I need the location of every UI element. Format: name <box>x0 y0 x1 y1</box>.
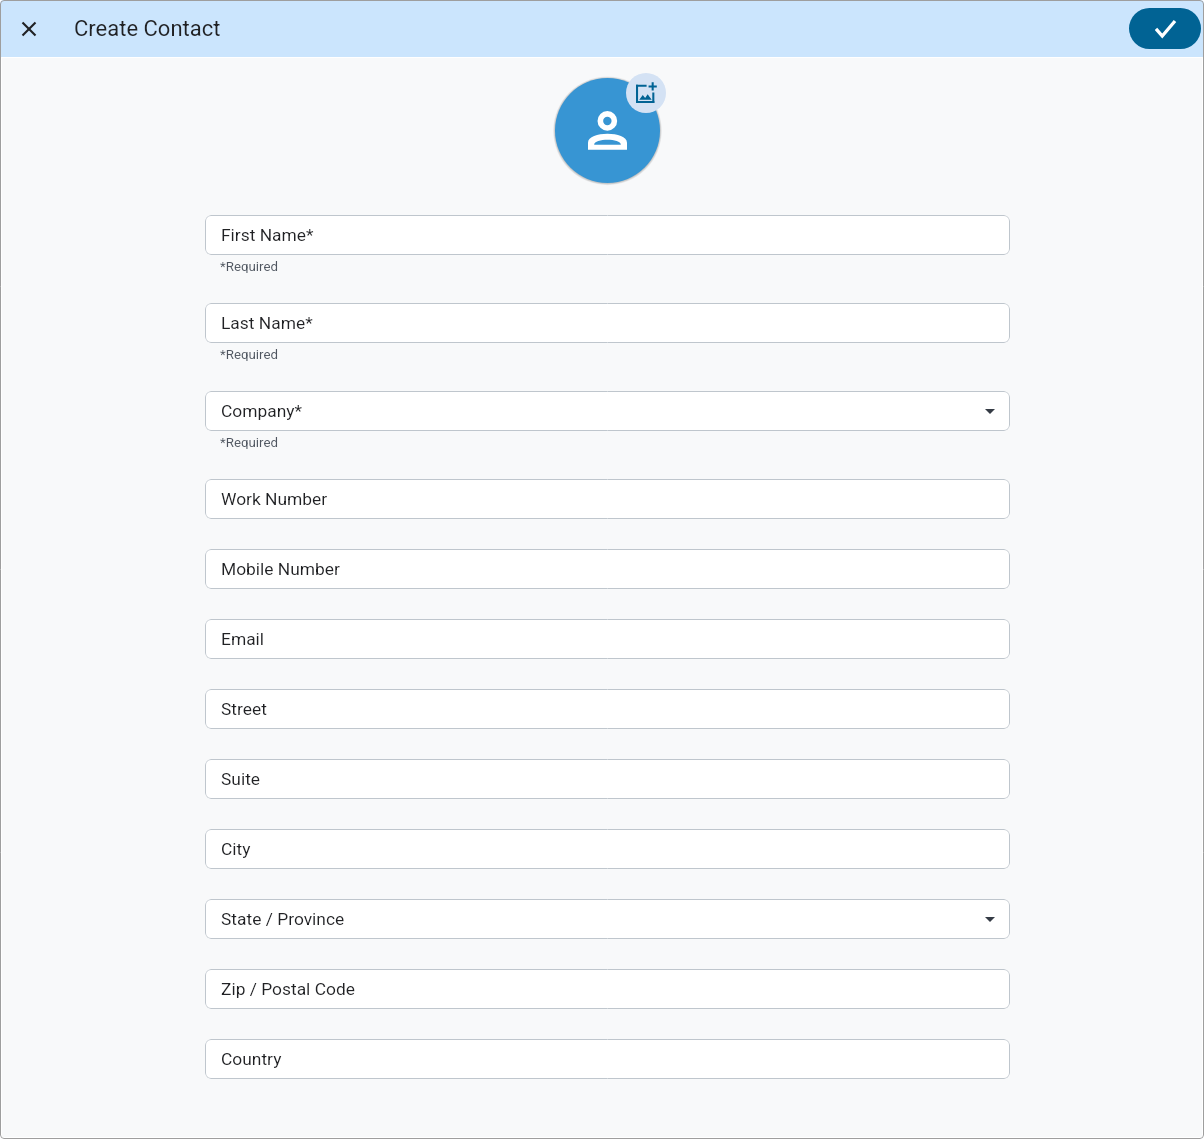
staticText: *Required <box>220 347 279 361</box>
staticText: State / Province <box>221 909 345 929</box>
button[interactable]: Zip / Postal Code <box>205 969 1010 1009</box>
button[interactable]: Work Number <box>205 479 1010 519</box>
staticText: Zip / Postal Code <box>221 979 355 999</box>
staticText: Last Name* <box>221 313 313 333</box>
button[interactable]: First Name* <box>205 215 1010 255</box>
staticText: Create Contact <box>74 16 221 42</box>
button[interactable]: Add photo <box>626 73 666 113</box>
button[interactable]: Company* <box>205 391 1010 431</box>
button[interactable]: Contact photo <box>555 78 660 183</box>
staticText: Country <box>221 1049 282 1069</box>
staticText: Street <box>221 699 267 719</box>
button[interactable]: Close <box>9 9 49 49</box>
staticText: City <box>221 839 251 859</box>
button[interactable]: City <box>205 829 1010 869</box>
staticText: Email <box>221 629 265 649</box>
button[interactable]: State / Province <box>205 899 1010 939</box>
staticText: Work Number <box>221 489 328 509</box>
button[interactable]: Country <box>205 1039 1010 1079</box>
staticText: Mobile Number <box>221 559 340 579</box>
staticText: *Required <box>220 259 279 273</box>
button[interactable]: Save contact <box>1129 8 1201 49</box>
staticText: First Name* <box>221 225 314 245</box>
staticText: Suite <box>221 769 261 789</box>
staticText: *Required <box>220 435 279 449</box>
button[interactable]: Street <box>205 689 1010 729</box>
staticText: Company* <box>221 401 303 421</box>
button[interactable]: Suite <box>205 759 1010 799</box>
button[interactable]: Email <box>205 619 1010 659</box>
button[interactable]: Mobile Number <box>205 549 1010 589</box>
button[interactable]: Last Name* <box>205 303 1010 343</box>
